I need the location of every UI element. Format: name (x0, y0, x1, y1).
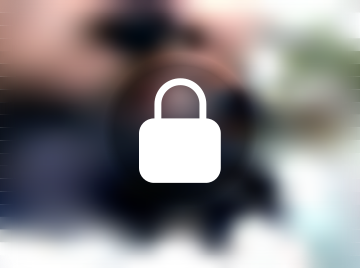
button[interactable]: Unlock (102, 53, 257, 208)
